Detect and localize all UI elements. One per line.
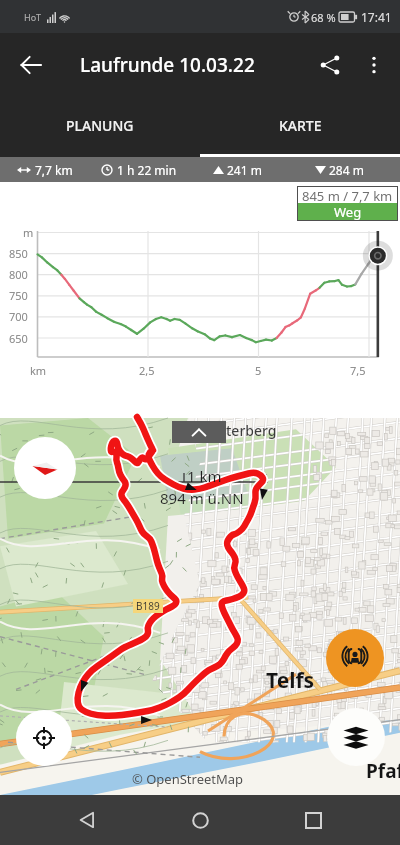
- button[interactable]: Back: [61, 795, 113, 845]
- staticText: 1 h 22 min: [117, 162, 177, 178]
- staticText: © OpenStreetMap: [132, 770, 244, 788]
- staticText: 850: [9, 246, 28, 261]
- staticText: 68 %: [311, 10, 336, 25]
- button[interactable]: Collapse panel: [172, 421, 226, 443]
- button[interactable]: More options: [352, 43, 396, 87]
- button[interactable]: PLANUNG: [0, 97, 200, 157]
- staticText: km: [30, 363, 47, 378]
- staticText: HoT: [24, 11, 42, 23]
- button[interactable]: Map layers: [327, 708, 385, 766]
- staticText: 7,7 km: [35, 162, 73, 178]
- staticText: 845 m / 7,7 km: [302, 187, 393, 203]
- button[interactable]: Compass: [14, 437, 76, 499]
- staticText: 800: [9, 267, 28, 282]
- staticText: Laufrunde 10.03.22: [80, 52, 255, 78]
- staticText: 894 m ü.NN: [160, 488, 244, 508]
- staticText: KARTE: [279, 116, 322, 135]
- staticText: m: [23, 225, 34, 240]
- staticText: Telfs: [266, 666, 315, 695]
- button[interactable]: Share: [308, 43, 352, 87]
- staticText: B189: [136, 599, 160, 613]
- button[interactable]: Recent apps: [287, 795, 339, 845]
- button[interactable]: KARTE: [200, 97, 400, 157]
- staticText: 750: [9, 288, 28, 303]
- staticText: 17:41: [361, 9, 392, 25]
- button[interactable]: Live tracking: [326, 629, 384, 687]
- staticText: Pfaf: [366, 758, 400, 784]
- staticText: 5: [255, 363, 262, 378]
- staticText: 700: [9, 309, 28, 324]
- staticText: terberg: [226, 421, 277, 440]
- staticText: PLANUNG: [66, 116, 134, 135]
- button[interactable]: Back: [10, 44, 52, 86]
- staticText: Weg: [334, 203, 362, 220]
- staticText: 650: [9, 331, 28, 346]
- staticText: 1 km: [187, 466, 222, 486]
- staticText: 7,5: [350, 363, 366, 378]
- button[interactable]: Home: [174, 795, 226, 845]
- button[interactable]: My location: [16, 710, 72, 766]
- staticText: 241 m: [227, 162, 262, 178]
- staticText: 2,5: [139, 363, 155, 378]
- staticText: 284 m: [329, 162, 364, 178]
